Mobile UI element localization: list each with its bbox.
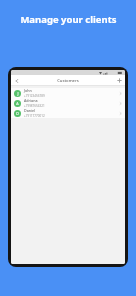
staticText: +79117770012: [24, 114, 45, 118]
staticText: Adriana: [24, 98, 38, 103]
button[interactable]: D: [11, 108, 125, 118]
button[interactable]: J: [11, 88, 125, 98]
staticText: +79987654321: [24, 104, 45, 108]
staticText: J: [17, 91, 19, 96]
button[interactable]: Add customer: [114, 75, 125, 86]
staticText: D: [16, 111, 19, 116]
staticText: Manage your clients: [20, 13, 117, 26]
button[interactable]: A: [11, 98, 125, 108]
staticText: Customers: [57, 78, 79, 84]
staticText: Daniel: [24, 108, 35, 113]
staticText: John: [24, 88, 32, 93]
button[interactable]: Back: [11, 75, 22, 86]
staticText: A: [16, 101, 19, 106]
staticText: +79123456789: [24, 94, 45, 98]
